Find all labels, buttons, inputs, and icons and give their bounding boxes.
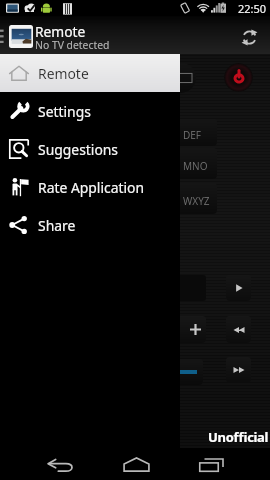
staticText: Suggestions <box>38 140 119 159</box>
staticText: Remote <box>35 22 86 41</box>
button[interactable]: DEF <box>168 119 217 146</box>
staticText: 22:50 <box>238 1 267 16</box>
button[interactable]: Button <box>160 275 206 301</box>
button[interactable]: FF <box>226 357 251 383</box>
button[interactable]: Share <box>0 206 180 244</box>
staticText: Share <box>38 216 76 235</box>
button[interactable]: Rate Application <box>0 168 180 206</box>
button[interactable]: Open navigation drawer <box>9 25 33 48</box>
button[interactable]: REW <box>226 316 251 343</box>
button[interactable]: Power <box>224 63 253 92</box>
button[interactable]: Refresh <box>234 22 264 52</box>
button[interactable]: Back <box>28 449 92 480</box>
staticText: No TV detected <box>35 38 110 52</box>
button[interactable]: Volume up <box>160 316 206 343</box>
button[interactable]: Source <box>150 63 196 93</box>
staticText: Remote <box>38 64 89 83</box>
button[interactable]: WXYZ <box>168 183 217 214</box>
staticText: Rate Application <box>38 178 145 197</box>
button[interactable]: PLAY <box>226 275 251 301</box>
staticText: Settings <box>38 102 91 121</box>
button[interactable]: Settings <box>0 92 180 130</box>
staticText: WXYZ <box>183 194 210 208</box>
button[interactable]: Recent apps <box>179 449 243 480</box>
button[interactable]: MNO <box>168 148 217 179</box>
button[interactable]: Remote <box>0 54 180 92</box>
staticText: MNO <box>183 159 208 173</box>
staticText: Unofficial <box>208 428 269 446</box>
button[interactable]: Home <box>104 449 168 480</box>
button[interactable]: Suggestions <box>0 130 180 168</box>
staticText: DEF <box>183 128 202 142</box>
button[interactable]: Channel <box>159 359 203 385</box>
